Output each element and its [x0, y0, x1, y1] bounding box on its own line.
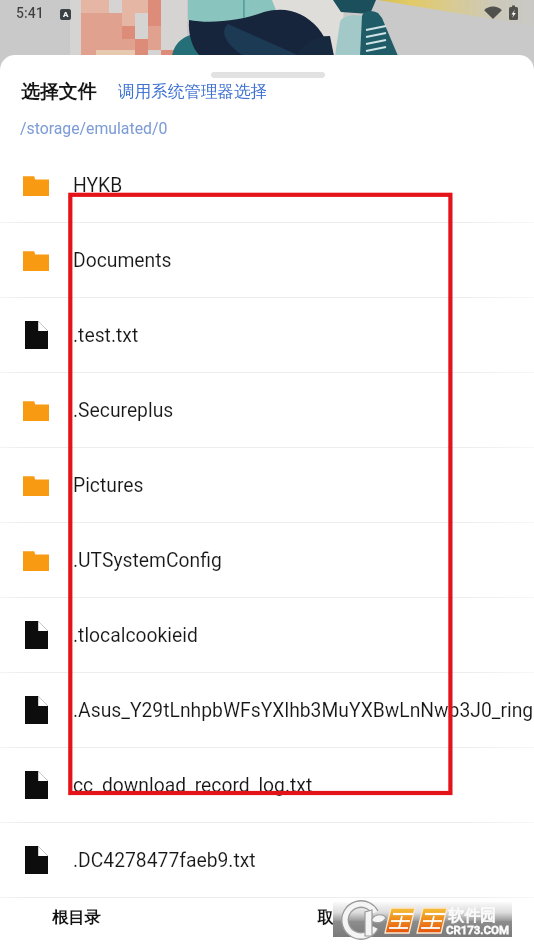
- button[interactable]: .Asus_Y29tLnhpbWFsYXlhb3MuYXBwLnNwb3J0_r…: [0, 673, 534, 748]
- staticText: 取消: [317, 907, 350, 928]
- staticText: A: [63, 10, 69, 19]
- button[interactable]: .test.txt: [0, 298, 534, 373]
- staticText: Pictures: [73, 474, 144, 497]
- staticText: 选择文件: [21, 80, 97, 104]
- button[interactable]: 根目录: [30, 893, 123, 942]
- button[interactable]: 调用系统管理器选择: [111, 78, 275, 105]
- button[interactable]: .UTSystemConfig: [0, 523, 534, 598]
- staticText: 调用系统管理器选择: [118, 81, 268, 102]
- staticText: .test.txt: [73, 324, 139, 347]
- button[interactable]: .Secureplus: [0, 373, 534, 448]
- staticText: Documents: [73, 249, 172, 272]
- staticText: HYKB: [73, 174, 123, 197]
- button[interactable]: .tlocalcookieid: [0, 598, 534, 673]
- staticText: 5:41: [16, 5, 44, 21]
- staticText: /storage/emulated/0: [20, 119, 168, 138]
- staticText: 根目录: [52, 907, 101, 928]
- button[interactable]: Pictures: [0, 448, 534, 523]
- button[interactable]: cc_download_record_log.txt: [0, 748, 534, 823]
- staticText: .UTSystemConfig: [73, 549, 222, 572]
- staticText: .DC4278477faeb9.txt: [73, 849, 256, 872]
- staticText: .Secureplus: [73, 399, 174, 422]
- staticText: .tlocalcookieid: [73, 624, 198, 647]
- staticText: cc_download_record_log.txt: [73, 774, 313, 797]
- staticText: .Asus_Y29tLnhpbWFsYXlhb3MuYXBwLnNwb3J0_r…: [73, 699, 534, 722]
- button[interactable]: 取消: [295, 893, 372, 942]
- staticText: CR173.COM: [446, 923, 510, 936]
- button[interactable]: .DC4278477faeb9.txt: [0, 823, 534, 898]
- button[interactable]: HYKB: [0, 148, 534, 223]
- staticText: 软件园: [448, 906, 496, 926]
- button[interactable]: Documents: [0, 223, 534, 298]
